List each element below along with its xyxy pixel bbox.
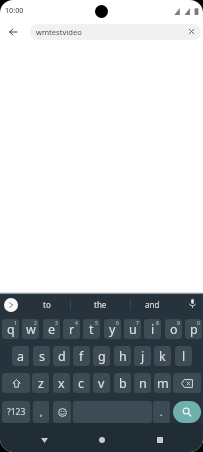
staticText: x (58, 375, 65, 392)
staticText: e (48, 321, 56, 338)
staticText: b (119, 375, 127, 392)
button[interactable]: Comma (33, 401, 49, 423)
button[interactable]: Home (92, 430, 112, 450)
button[interactable]: k (154, 346, 171, 366)
button[interactable]: x (53, 373, 70, 393)
staticText: 7 (136, 320, 139, 327)
button[interactable]: Emoji (53, 401, 71, 423)
button[interactable]: m (154, 373, 171, 393)
staticText: 2 (34, 320, 37, 327)
staticText: f (79, 348, 84, 365)
button[interactable]: to (24, 293, 70, 315)
staticText: the (94, 299, 107, 310)
button[interactable]: Shift (2, 373, 30, 393)
button[interactable]: p (185, 319, 202, 339)
staticText: i (151, 321, 155, 338)
staticText: ?123 (7, 406, 26, 418)
button[interactable]: u (124, 319, 141, 339)
staticText: y (109, 321, 116, 338)
staticText: c (78, 375, 85, 392)
button[interactable]: h (114, 346, 131, 366)
button[interactable]: i (144, 319, 161, 339)
button[interactable]: e (43, 319, 60, 339)
button[interactable]: the (72, 293, 128, 315)
staticText: a (17, 348, 25, 365)
button[interactable]: Period (153, 401, 170, 423)
staticText: 10:00 (5, 5, 24, 15)
staticText: wmtestvideo (36, 27, 82, 37)
staticText: 8 (156, 320, 159, 327)
staticText: p (190, 321, 198, 338)
staticText: v (98, 375, 105, 392)
button[interactable]: w (22, 319, 39, 339)
button[interactable]: l (175, 346, 192, 366)
staticText: 6 (116, 320, 119, 327)
button[interactable]: z (32, 373, 49, 393)
button[interactable]: and (132, 293, 172, 315)
staticText: 5 (95, 320, 98, 327)
button[interactable]: Voice input (182, 293, 202, 313)
staticText: u (129, 321, 137, 338)
staticText: h (119, 348, 127, 365)
staticText: 1 (14, 320, 17, 327)
button[interactable]: Backspace (173, 373, 201, 393)
button[interactable]: t (83, 319, 100, 339)
button[interactable]: wmtestvideo (30, 24, 201, 40)
button[interactable]: s (33, 346, 50, 366)
staticText: . (160, 406, 163, 418)
button[interactable]: v (93, 373, 110, 393)
button[interactable]: Expand suggestions (4, 298, 18, 312)
button[interactable]: f (73, 346, 90, 366)
staticText: 0 (197, 320, 200, 327)
staticText: q (7, 321, 15, 338)
button[interactable]: Recents (150, 430, 170, 450)
staticText: w (26, 321, 36, 338)
button[interactable]: o (165, 319, 182, 339)
staticText: to (43, 299, 51, 310)
button[interactable]: Symbols (2, 401, 30, 423)
staticText: l (182, 348, 186, 365)
button[interactable]: a (12, 346, 29, 366)
button[interactable]: j (134, 346, 151, 366)
button[interactable]: Search (173, 401, 201, 423)
staticText: 3 (55, 320, 58, 327)
staticText: r (69, 321, 75, 338)
staticText: and (145, 299, 160, 310)
staticText: z (38, 375, 44, 392)
staticText: s (39, 348, 45, 365)
staticText: o (170, 321, 178, 338)
staticText: g (98, 348, 106, 365)
button[interactable]: Back (4, 23, 21, 40)
button[interactable]: n (134, 373, 151, 393)
button[interactable]: c (73, 373, 90, 393)
staticText: n (139, 375, 147, 392)
button[interactable]: y (104, 319, 121, 339)
staticText: 4 (75, 320, 78, 327)
button[interactable]: Back (34, 430, 54, 450)
staticText: j (141, 348, 145, 365)
staticText: k (159, 348, 166, 365)
staticText: t (89, 321, 94, 338)
button[interactable]: Clear (185, 25, 197, 37)
staticText: d (58, 348, 66, 365)
button[interactable]: g (93, 346, 110, 366)
button[interactable]: d (53, 346, 70, 366)
staticText: 9 (177, 320, 180, 327)
button[interactable]: b (114, 373, 131, 393)
button[interactable]: r (63, 319, 80, 339)
staticText: , (40, 406, 43, 418)
button[interactable]: q (2, 319, 19, 339)
staticText: m (157, 375, 169, 392)
